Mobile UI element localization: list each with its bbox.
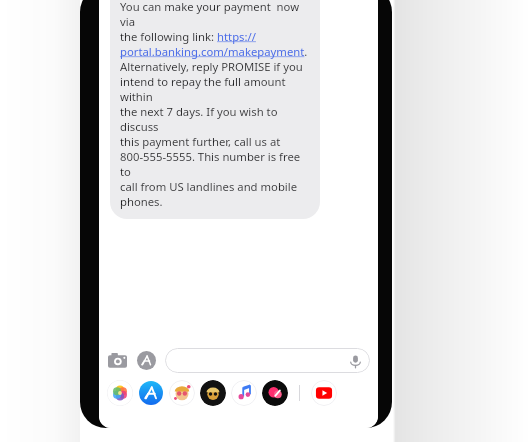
button[interactable]: Memoji xyxy=(200,380,226,406)
staticText: erdue on your payment. You can make your… xyxy=(120,0,310,209)
button[interactable]: Music xyxy=(231,380,257,406)
button[interactable]: App Store xyxy=(133,347,159,373)
button[interactable]: YouTube xyxy=(311,380,337,406)
button[interactable]: Images xyxy=(262,380,288,406)
button[interactable]: Photos xyxy=(107,380,133,406)
button[interactable]: Camera xyxy=(104,347,130,373)
other: Dictate xyxy=(347,353,363,369)
button[interactable]: App Store xyxy=(138,380,164,406)
button[interactable]: erdue on your payment. You can make your… xyxy=(110,0,320,219)
button[interactable]: Dictate xyxy=(165,348,370,373)
button[interactable]: Memoji stickers xyxy=(169,380,195,406)
